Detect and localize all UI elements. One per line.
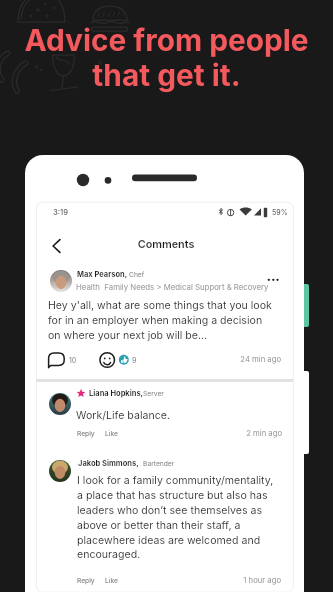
button[interactable]	[49, 393, 71, 415]
staticText: 2 min ago	[212, 429, 282, 438]
staticText: 24 min ago	[211, 355, 281, 364]
staticText: Health Family Needs > Medical Support & …	[76, 282, 269, 291]
staticText: Hey y'all, what are some things that you…	[48, 299, 272, 312]
staticText: Like	[105, 577, 118, 585]
staticText: a place that has structure but also has	[77, 489, 268, 502]
staticText: Advice from people	[0, 22, 333, 58]
staticText: Server	[143, 390, 164, 398]
button[interactable]: Back	[44, 234, 69, 258]
staticText: encouraged.	[77, 548, 141, 561]
staticText: Max Pearson,	[77, 270, 128, 279]
staticText: 1 hour ago	[211, 576, 281, 585]
staticText: Work/Life balance.	[76, 409, 170, 422]
button[interactable]	[50, 270, 72, 292]
staticText: Bartender	[143, 460, 175, 468]
staticText: Comments	[86, 238, 246, 251]
staticText: 10	[69, 356, 77, 364]
button[interactable]: Comments	[46, 350, 80, 370]
staticText: Reply	[77, 577, 95, 585]
button[interactable]: More options	[262, 270, 284, 290]
staticText: above or better than their staff, a	[77, 519, 241, 532]
staticText: 3:19	[53, 208, 68, 217]
staticText: 9	[132, 356, 137, 364]
staticText: that get it.	[0, 57, 333, 93]
staticText: 59%	[272, 208, 288, 216]
staticText: leaders who don’t see themselves as	[77, 504, 263, 517]
staticText: Chef	[129, 271, 145, 279]
staticText: I look for a family community/mentality,	[77, 474, 274, 487]
staticText: Liana Hopkins,	[89, 389, 144, 398]
staticText: Like	[105, 430, 118, 438]
staticText: Reply	[77, 430, 95, 438]
staticText: for in an employer when making a decisio…	[48, 314, 263, 327]
staticText: placewhere ideas are welcomed and	[77, 534, 261, 547]
staticText: on where your next job will be…	[48, 329, 208, 342]
button[interactable]	[75, 427, 95, 441]
button[interactable]	[49, 460, 71, 482]
staticText: Jakob Simmons,	[78, 459, 139, 468]
